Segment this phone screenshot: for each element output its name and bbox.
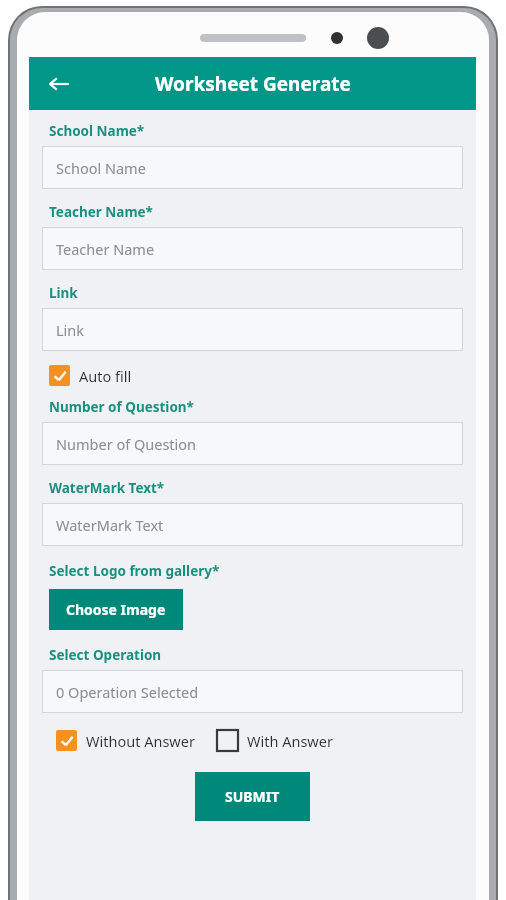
button[interactable]: Without Answer xyxy=(56,726,195,755)
button[interactable]: SUBMIT xyxy=(195,772,310,821)
button[interactable]: WaterMark Text xyxy=(42,503,463,546)
button[interactable]: Link xyxy=(42,308,463,351)
staticText: SUBMIT xyxy=(225,787,280,806)
staticText: Select Operation xyxy=(49,646,162,664)
button[interactable]: Back xyxy=(37,62,81,106)
staticText: Without Answer xyxy=(86,731,195,751)
staticText: School Name* xyxy=(49,122,145,140)
staticText: Select Logo from gallery* xyxy=(49,562,220,580)
staticText: Worksheet Generate xyxy=(155,71,351,97)
button[interactable]: Teacher Name xyxy=(42,227,463,270)
staticText: Number of Question* xyxy=(49,398,194,416)
staticText: Number of Question xyxy=(56,434,197,454)
staticText: 0 Operation Selected xyxy=(56,682,199,702)
staticText: Link xyxy=(49,284,78,302)
staticText: Teacher Name xyxy=(56,239,155,259)
staticText: With Answer xyxy=(247,731,333,751)
button[interactable]: Number of Question xyxy=(42,422,463,465)
button[interactable]: School Name xyxy=(42,146,463,189)
button[interactable]: 0 Operation Selected xyxy=(42,670,463,713)
button[interactable]: With Answer xyxy=(217,726,333,755)
staticText: School Name xyxy=(56,158,146,178)
staticText: Choose Image xyxy=(66,600,166,619)
staticText: WaterMark Text xyxy=(56,515,164,535)
staticText: WaterMark Text* xyxy=(49,479,165,497)
staticText: Auto fill xyxy=(79,366,132,386)
button[interactable]: Auto fill xyxy=(49,361,132,390)
staticText: Link xyxy=(56,320,85,340)
button[interactable]: Choose Image xyxy=(49,589,183,630)
staticText: Teacher Name* xyxy=(49,203,153,221)
